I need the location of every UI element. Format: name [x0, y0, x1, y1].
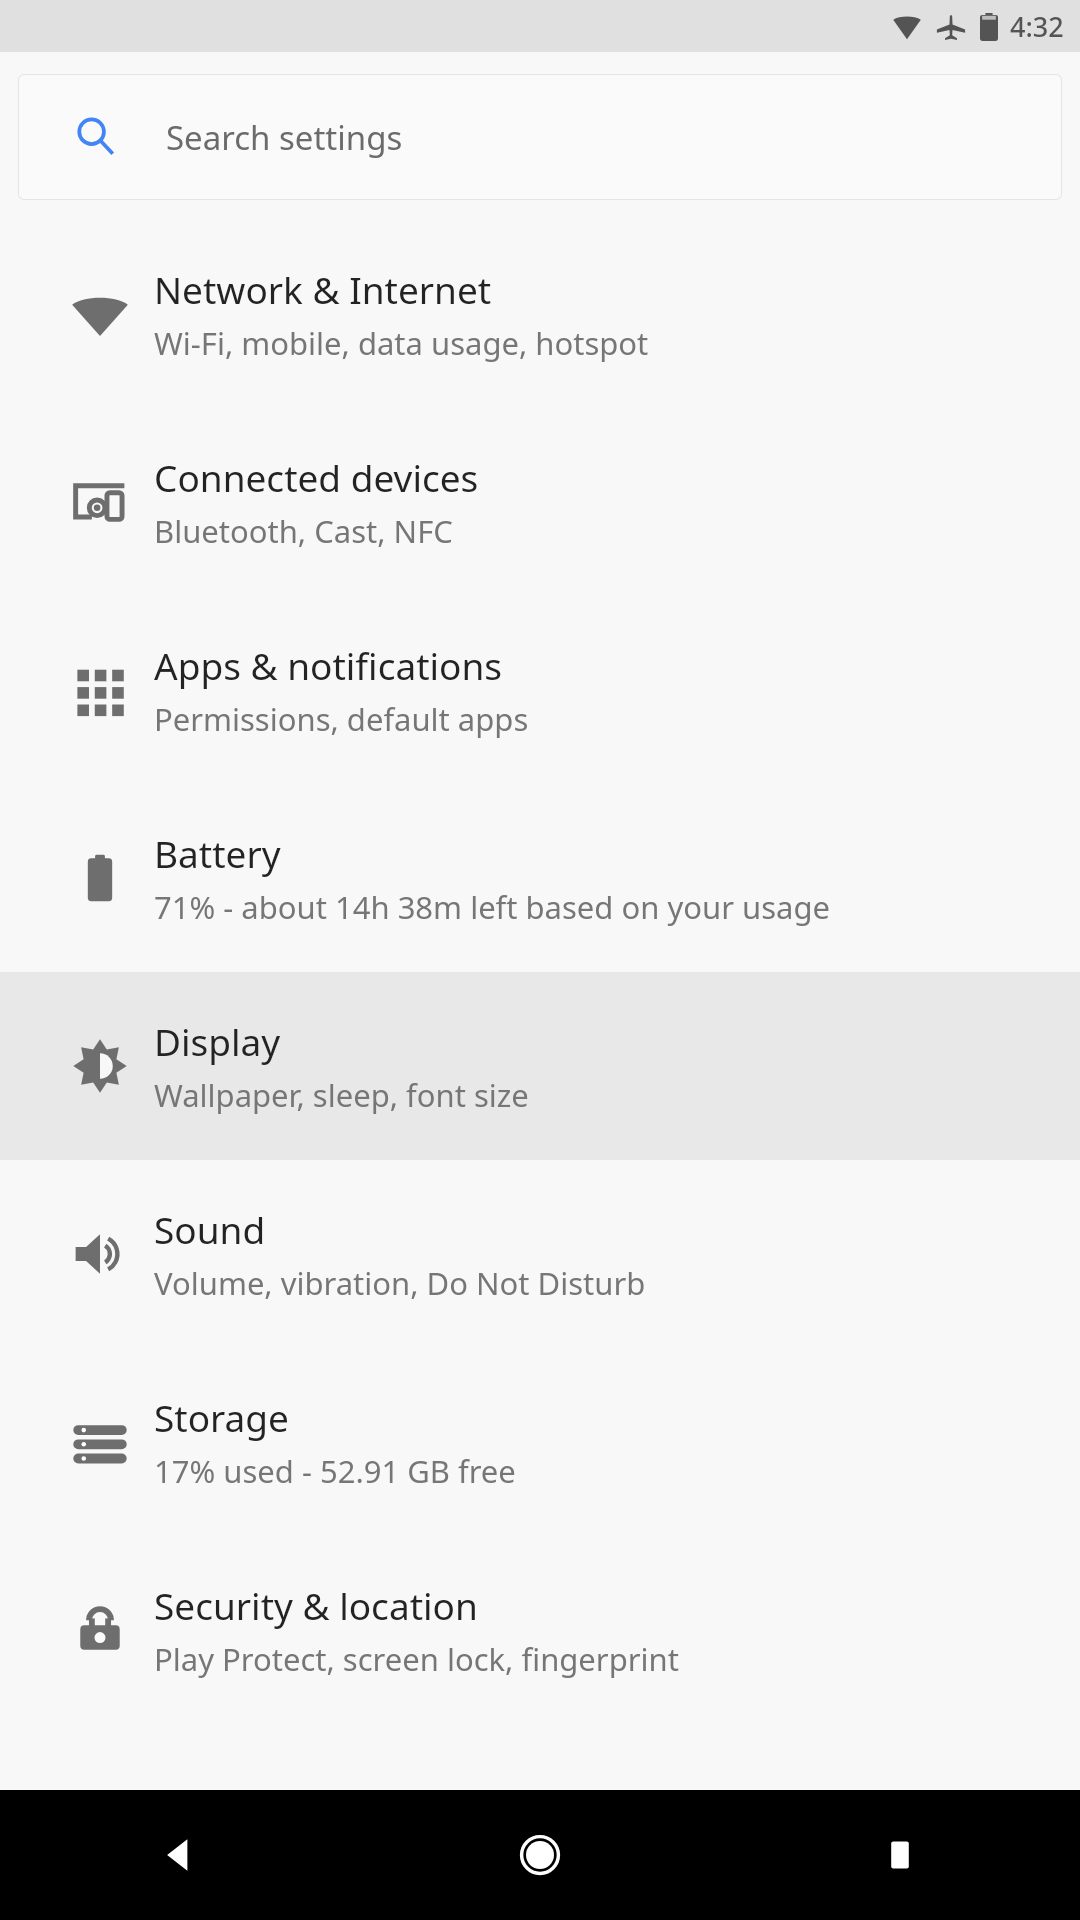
button[interactable]: Storage	[0, 1348, 1080, 1536]
staticText: Play Protect, screen lock, fingerprint	[154, 1638, 679, 1680]
staticText: Wi-Fi, mobile, data usage, hotspot	[154, 322, 649, 364]
staticText: Apps & notifications	[154, 640, 503, 690]
staticText: Storage	[154, 1392, 289, 1442]
staticText: Wallpaper, sleep, font size	[154, 1074, 529, 1116]
button[interactable]: Network & Internet	[0, 220, 1080, 408]
staticText: Display	[154, 1016, 281, 1066]
button[interactable]: Connected devices	[0, 408, 1080, 596]
staticText: Security & location	[154, 1580, 478, 1630]
staticText: Permissions, default apps	[154, 698, 529, 740]
staticText: 17% used - 52.91 GB free	[154, 1450, 516, 1492]
button[interactable]: Search settings	[18, 74, 1062, 200]
button[interactable]: Back	[0, 1790, 360, 1920]
button[interactable]: Sound	[0, 1160, 1080, 1348]
button[interactable]: Display	[0, 972, 1080, 1160]
staticText: Connected devices	[154, 452, 479, 502]
staticText: 4:32	[1010, 8, 1064, 45]
staticText: Search settings	[166, 115, 403, 160]
staticText: Network & Internet	[154, 264, 492, 314]
button[interactable]: Apps & notifications	[0, 596, 1080, 784]
staticText: Volume, vibration, Do Not Disturb	[154, 1262, 646, 1304]
button[interactable]: Security & location	[0, 1536, 1080, 1724]
staticText: Sound	[154, 1204, 266, 1254]
staticText: 71% - about 14h 38m left based on your u…	[154, 886, 830, 928]
button[interactable]: Home	[360, 1790, 720, 1920]
button[interactable]: Recent apps	[720, 1790, 1080, 1920]
button[interactable]: Battery	[0, 784, 1080, 972]
staticText: Bluetooth, Cast, NFC	[154, 510, 453, 552]
staticText: Battery	[154, 828, 281, 878]
